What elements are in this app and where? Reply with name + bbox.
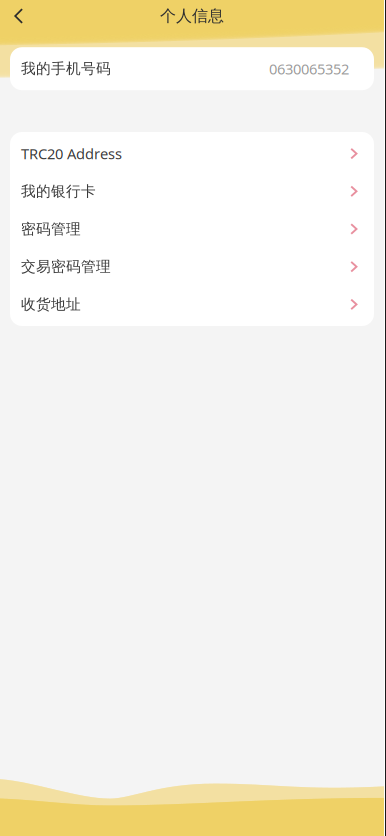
button[interactable]: TRC20 Address bbox=[10, 135, 374, 172]
button[interactable]: 我的银行卡 bbox=[10, 172, 374, 210]
button[interactable]: 密码管理 bbox=[10, 210, 374, 248]
staticText: 我的手机号码 bbox=[21, 60, 111, 78]
button[interactable]: 收货地址 bbox=[10, 286, 374, 323]
staticText: 密码管理 bbox=[21, 220, 81, 238]
staticText: 0630065352 bbox=[269, 59, 349, 78]
staticText: 我的银行卡 bbox=[21, 182, 96, 200]
button[interactable]: Back bbox=[0, 0, 39, 32]
button[interactable]: 我的手机号码 bbox=[10, 47, 374, 90]
staticText: 收货地址 bbox=[21, 295, 81, 313]
button[interactable]: 交易密码管理 bbox=[10, 248, 374, 286]
staticText: 交易密码管理 bbox=[21, 258, 111, 276]
staticText: TRC20 Address bbox=[21, 144, 122, 163]
staticText: 个人信息 bbox=[160, 6, 224, 26]
